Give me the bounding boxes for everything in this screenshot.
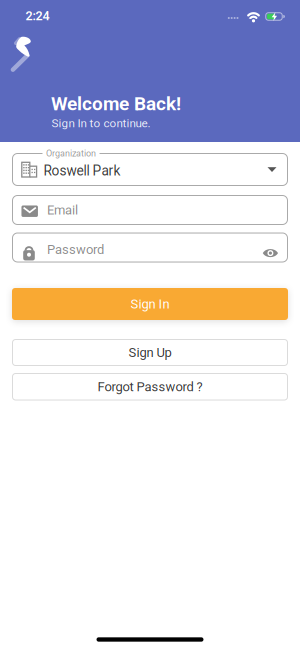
button[interactable]: Email [12, 195, 288, 225]
staticText: Organization [46, 148, 96, 159]
staticText: Forgot Password ? [97, 379, 202, 394]
button[interactable]: Forgot Password ? [12, 373, 288, 400]
staticText: Sign In [130, 296, 169, 312]
staticText: Sign Up [128, 345, 171, 360]
staticText: Password [47, 242, 104, 257]
button[interactable]: Sign Up [12, 339, 288, 366]
button[interactable]: Sign In [12, 288, 288, 320]
button[interactable]: Password [12, 232, 288, 262]
button[interactable]: Show password [252, 232, 288, 262]
staticText: Sign In to continue. [51, 116, 150, 130]
button[interactable]: Roswell Park [12, 153, 288, 186]
staticText: Email [47, 202, 78, 218]
staticText: 2:24 [25, 9, 49, 23]
staticText: Roswell Park [43, 163, 120, 179]
staticText: Welcome Back! [51, 92, 181, 115]
